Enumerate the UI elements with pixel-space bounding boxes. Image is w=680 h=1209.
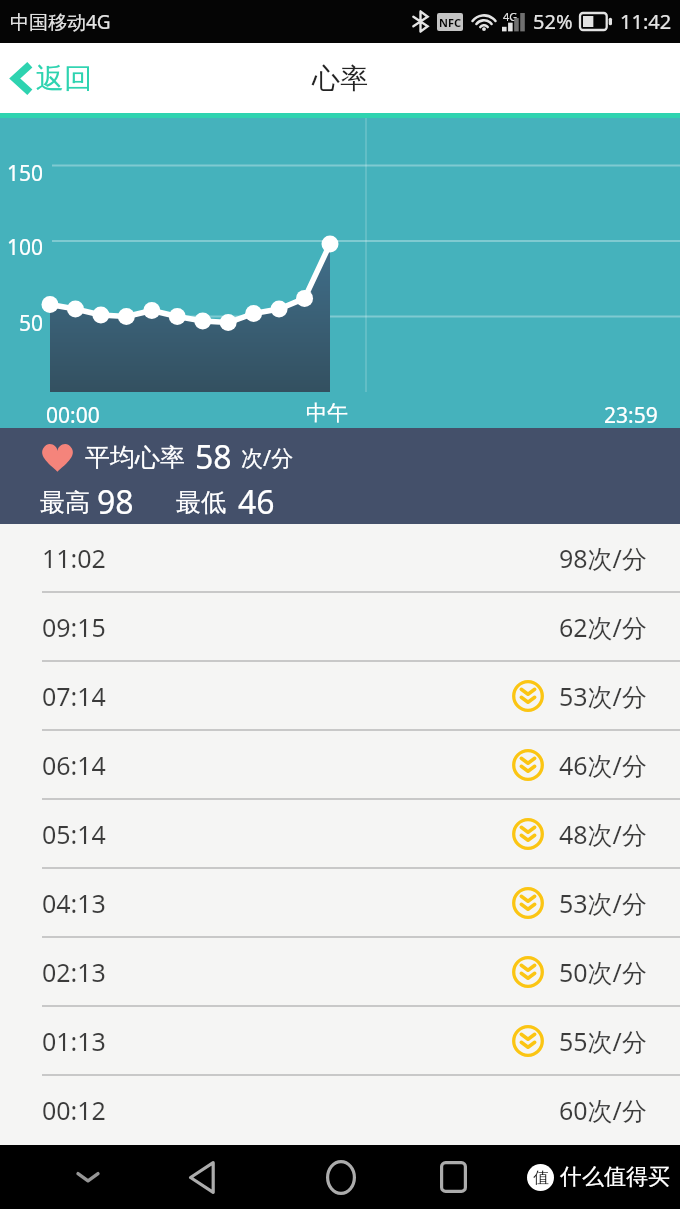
staticText: 62次/分 [559,610,647,644]
button[interactable]: 11:02 [0,524,680,593]
button[interactable]: Back [166,1145,238,1209]
staticText: 58 [195,435,232,479]
staticText: 平均心率 [85,442,185,473]
button[interactable]: 返回 [0,51,110,106]
staticText: 05:14 [42,817,106,851]
button[interactable]: 04:13 [0,869,680,938]
staticText: 最低 [176,487,226,518]
staticText: 04:13 [42,886,106,920]
button[interactable]: 01:13 [0,1007,680,1076]
staticText: 50次/分 [559,955,647,989]
staticText: 11:42 [620,8,672,35]
staticText: 100 [7,233,44,262]
staticText: 返回 [36,61,92,96]
staticText: 00:12 [42,1093,106,1127]
staticText: 53次/分 [559,679,647,713]
button[interactable]: 09:15 [0,593,680,662]
button[interactable]: 07:14 [0,662,680,731]
staticText: 55次/分 [559,1024,647,1058]
staticText: 中午 [306,400,348,426]
button[interactable]: Home [305,1145,377,1209]
staticText: 心率 [312,61,368,96]
staticText: 07:14 [42,679,106,713]
staticText: 50 [19,309,44,338]
staticText: 53次/分 [559,886,647,920]
staticText: 46 [238,480,275,524]
staticText: 00:00 [46,401,100,430]
staticText: 23:59 [604,401,658,430]
staticText: 98 [97,480,134,524]
button[interactable]: Hide [58,1145,118,1209]
staticText: 01:13 [42,1024,106,1058]
staticText: 什么值得买 [560,1163,670,1191]
staticText: 02:13 [42,955,106,989]
staticText: 中国移动4G [10,9,111,35]
staticText: 52% [533,8,573,35]
staticText: NFC [439,15,462,30]
staticText: 09:15 [42,610,106,644]
staticText: 48次/分 [559,817,647,851]
staticText: 46次/分 [559,748,647,782]
button[interactable]: 00:12 [0,1076,680,1145]
button[interactable]: 06:14 [0,731,680,800]
staticText: 150 [7,159,44,188]
button[interactable]: 02:13 [0,938,680,1007]
staticText: 次/分 [241,442,294,472]
staticText: 98次/分 [559,541,647,575]
staticText: 最高 [40,487,90,518]
staticText: 60次/分 [559,1093,647,1127]
staticText: 值 [533,1168,549,1188]
staticText: 06:14 [42,748,106,782]
button[interactable]: 05:14 [0,800,680,869]
staticText: 11:02 [42,541,106,575]
button[interactable]: Recents [417,1145,489,1209]
staticText: 4G [503,9,518,24]
